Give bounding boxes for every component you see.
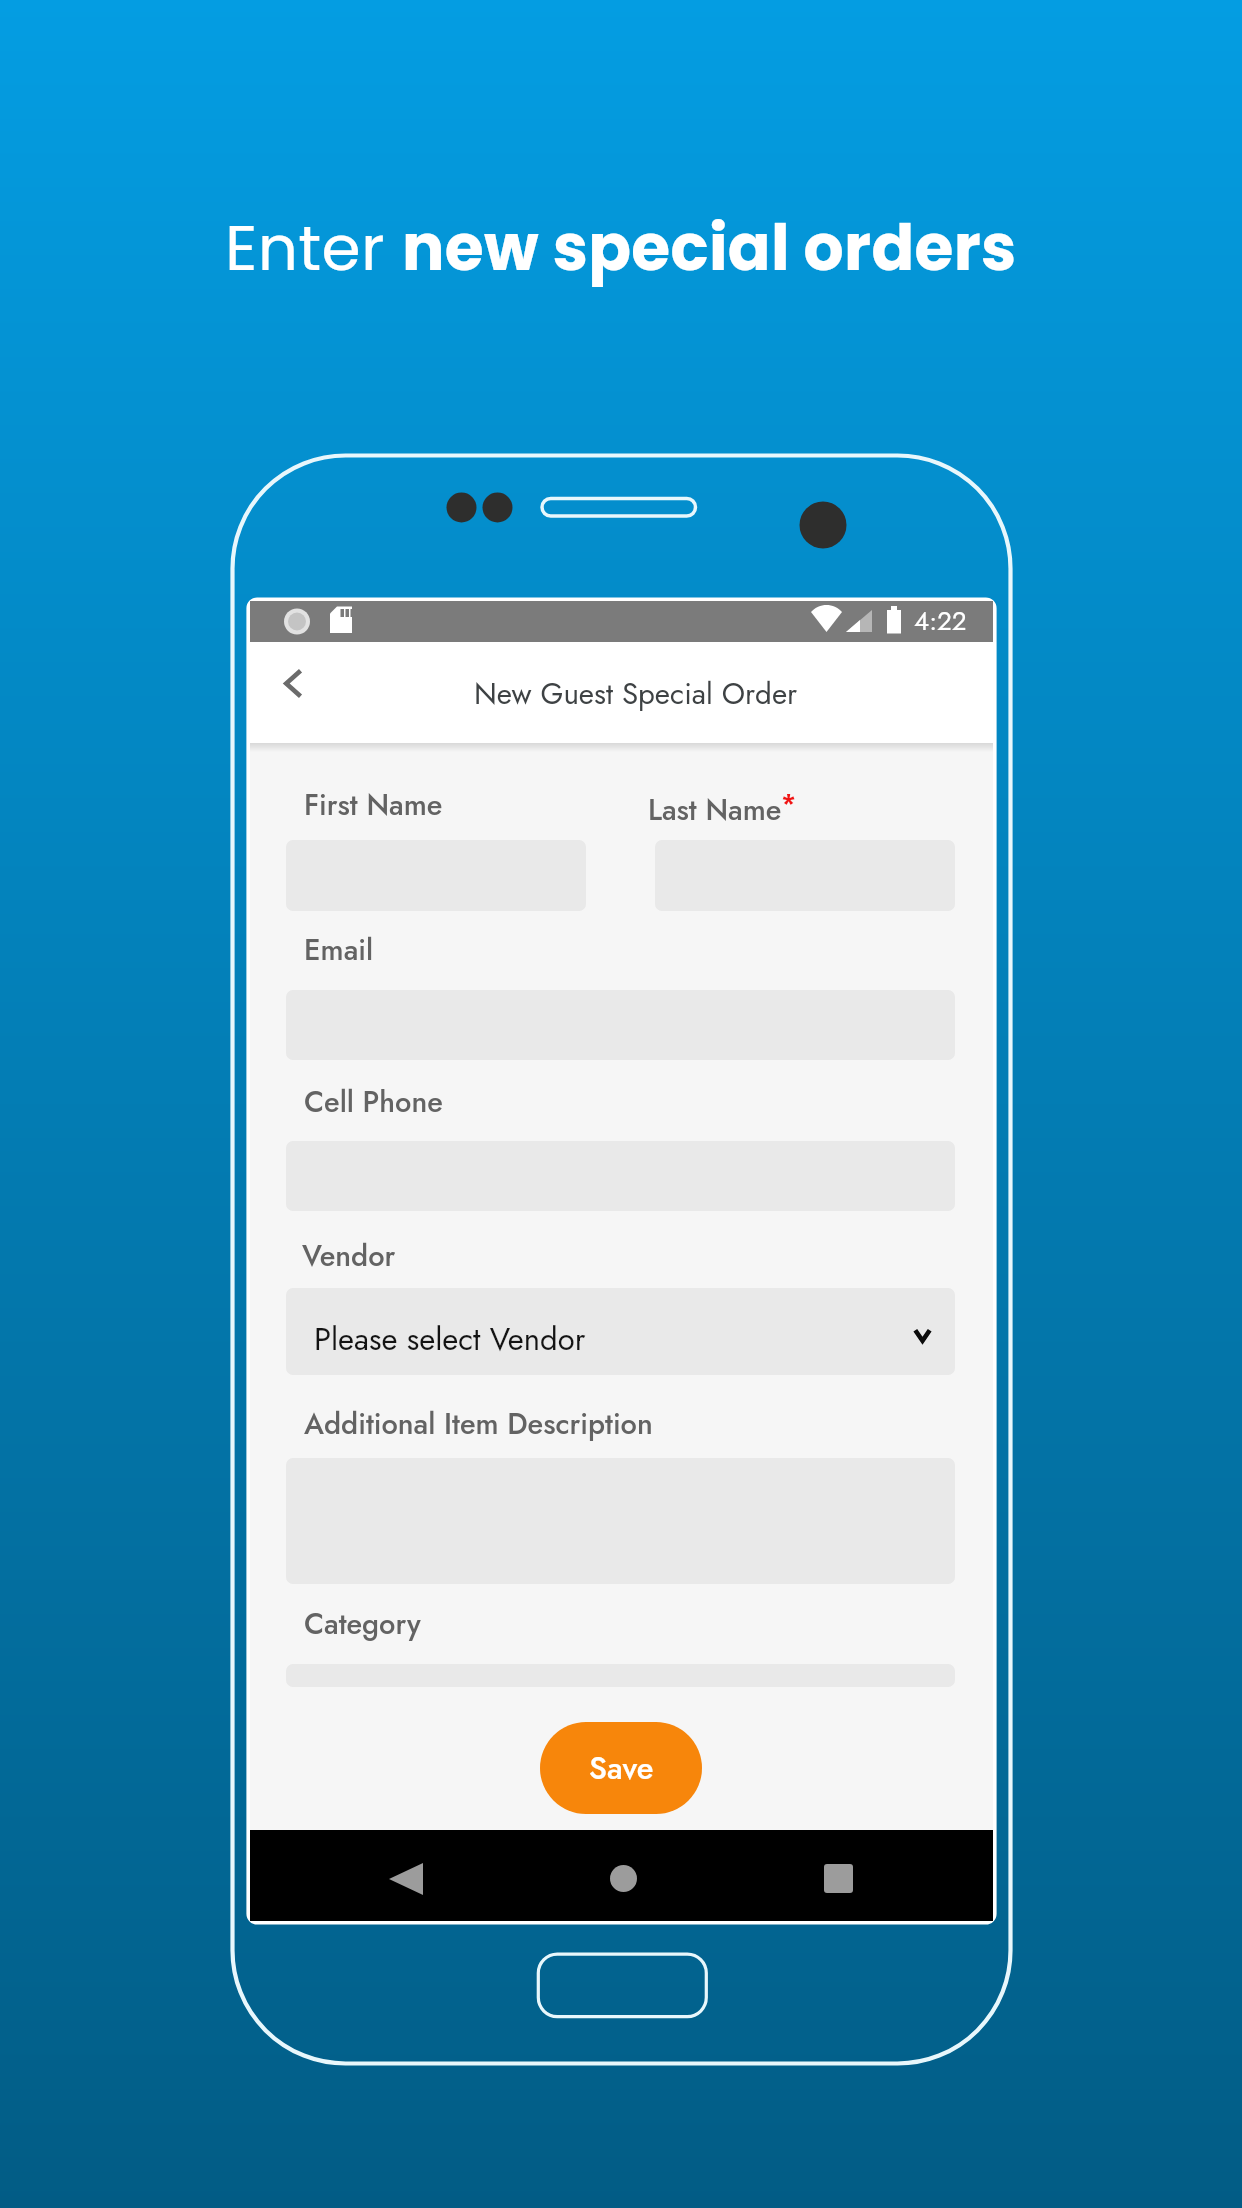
staticText: 4:22 — [914, 602, 967, 640]
button[interactable]: Navigate back — [257, 648, 327, 718]
staticText: First Name — [304, 784, 443, 826]
staticText: Cell Phone — [304, 1081, 443, 1123]
button[interactable]: Recent apps — [807, 1847, 869, 1909]
staticText: Save — [589, 1746, 654, 1791]
staticText: Email — [304, 929, 374, 971]
button[interactable]: Home — [592, 1847, 654, 1909]
staticText: Vendor — [302, 1235, 396, 1277]
button[interactable]: Back — [375, 1848, 437, 1910]
staticText: Enter new special orders — [225, 204, 1017, 292]
staticText: Additional Item Description — [304, 1403, 653, 1445]
staticText: New Guest Special Order — [474, 672, 798, 715]
staticText: Category — [304, 1603, 421, 1645]
staticText: Please select Vendor — [314, 1317, 586, 1362]
button[interactable]: Please select Vendor — [286, 1288, 955, 1375]
staticText: Last Name* — [648, 784, 796, 831]
button[interactable]: Save — [540, 1722, 702, 1814]
